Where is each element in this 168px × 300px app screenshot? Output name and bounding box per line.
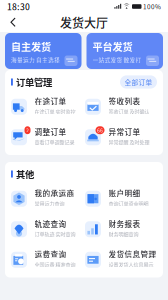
- staticText: 异常提醒 及时处理: [108, 138, 149, 145]
- button[interactable]: 财务报表: [85, 212, 157, 243]
- button[interactable]: 签收列表: [85, 90, 157, 120]
- staticText: 在途订单: [34, 96, 66, 107]
- staticText: 调整订单: [34, 126, 66, 137]
- staticText: 发货信息管理: [108, 249, 156, 260]
- staticText: 100%: [143, 2, 161, 11]
- button[interactable]: 运费查询: [11, 243, 83, 273]
- staticText: 轨迹查询: [34, 218, 66, 229]
- staticText: 运费查询: [34, 249, 66, 260]
- staticText: 自主发货: [11, 39, 51, 54]
- staticText: 全国运费 精准查询: [34, 261, 75, 268]
- staticText: 财务报表: [108, 218, 140, 229]
- button[interactable]: 66: [85, 120, 157, 151]
- staticText: 2: [26, 126, 29, 134]
- button[interactable]: 全部订单: [120, 75, 157, 89]
- button[interactable]: 我的承运商: [11, 182, 83, 212]
- staticText: 查询订单资金明细: [108, 200, 148, 207]
- staticText: 订单管理: [16, 75, 52, 89]
- staticText: 全部订单: [124, 77, 152, 87]
- staticText: 海量运力 自主选择: [11, 56, 60, 64]
- staticText: 发货大厅: [60, 14, 108, 31]
- button[interactable]: 在途订单: [11, 90, 83, 120]
- staticText: 66: [97, 126, 103, 134]
- staticText: 常用运力查询: [34, 200, 64, 207]
- staticText: 18:30: [7, 0, 30, 13]
- staticText: 账户明细: [108, 188, 140, 199]
- staticText: 平台发货: [92, 39, 132, 54]
- staticText: 在途订单 实时监控: [34, 108, 75, 115]
- staticText: 订单轨迹 实时查询: [34, 230, 75, 237]
- staticText: 其他: [16, 167, 34, 181]
- staticText: 签收列表: [108, 96, 140, 107]
- staticText: 异常订单: [108, 126, 140, 137]
- staticText: 一站式发货 散发打: [92, 56, 141, 64]
- staticText: 财务明细查询: [108, 230, 138, 237]
- staticText: 查看订单调整记录: [34, 138, 74, 145]
- staticText: 我的承运商: [34, 188, 74, 199]
- button[interactable]: 平台发货: [86, 33, 163, 69]
- button[interactable]: 自主发货: [5, 33, 81, 69]
- button[interactable]: Back: [5, 14, 21, 30]
- button[interactable]: 发货信息管理: [85, 243, 157, 273]
- button[interactable]: 2: [11, 120, 83, 151]
- button[interactable]: 轨迹查询: [11, 212, 83, 243]
- staticText: 设置发货人信息展示: [108, 261, 153, 268]
- staticText: 签收订单 及时确认: [108, 108, 149, 115]
- button[interactable]: 账户明细: [85, 182, 157, 212]
